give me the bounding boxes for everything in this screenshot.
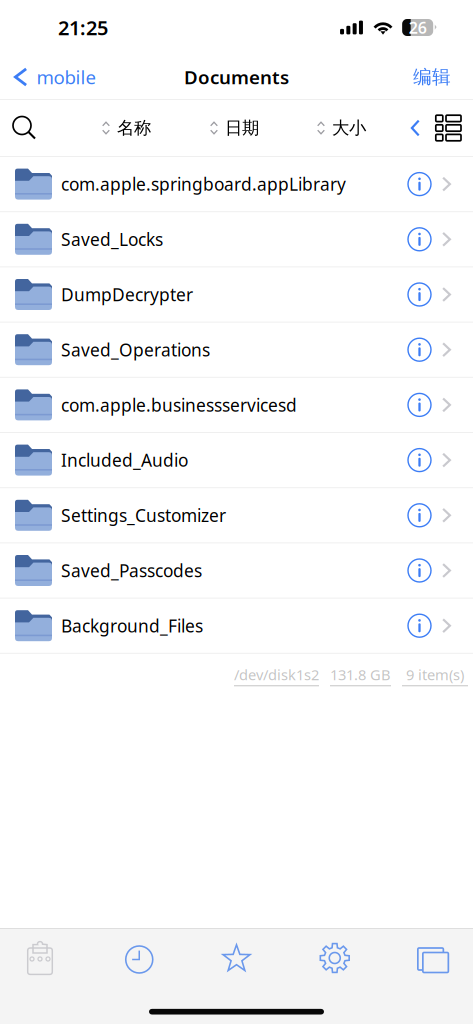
button[interactable]: com.apple.businessservicesd — [0, 378, 473, 433]
staticText: Saved_Locks — [61, 228, 163, 251]
staticText: 日期 — [225, 117, 259, 139]
staticText: Documents — [184, 65, 289, 89]
staticText: /dev/disk1s2 — [234, 665, 319, 684]
button[interactable]: Windows — [393, 929, 473, 987]
staticText: 21:25 — [58, 14, 108, 41]
button[interactable]: Search — [0, 106, 36, 149]
button[interactable]: Saved_Locks — [0, 212, 473, 267]
staticText: 9 item(s) — [406, 665, 464, 684]
button[interactable]: Clipboard — [0, 929, 80, 987]
staticText: Settings_Customizer — [61, 504, 226, 527]
button[interactable]: Settings — [295, 929, 375, 987]
button[interactable]: Previous — [411, 109, 420, 146]
button[interactable]: Favorites — [196, 929, 276, 987]
staticText: 131.8 GB — [330, 665, 391, 684]
button[interactable]: Saved_Passcodes — [0, 543, 473, 599]
staticText: Saved_Operations — [61, 338, 210, 361]
button[interactable]: mobile — [0, 53, 96, 101]
button[interactable]: DumpDecrypter — [0, 267, 473, 323]
button[interactable]: Settings_Customizer — [0, 488, 473, 543]
button[interactable]: 名称 — [102, 107, 151, 149]
button[interactable]: 131.8 GB — [330, 665, 391, 686]
button[interactable]: 9 item(s) — [402, 665, 468, 686]
button[interactable]: Included_Audio — [0, 433, 473, 488]
button[interactable]: Background_Files — [0, 599, 473, 654]
button[interactable]: com.apple.springboard.appLibrary — [0, 157, 473, 212]
button[interactable]: 编辑 — [413, 53, 473, 100]
button[interactable]: View mode — [420, 107, 473, 148]
staticText: Saved_Passcodes — [61, 559, 202, 582]
staticText: 26 — [409, 17, 427, 38]
button[interactable]: /dev/disk1s2 — [234, 665, 319, 686]
staticText: Included_Audio — [61, 449, 188, 472]
staticText: 名称 — [117, 117, 151, 139]
button[interactable]: Recents — [98, 929, 178, 987]
staticText: com.apple.springboard.appLibrary — [61, 173, 346, 196]
button[interactable]: 大小 — [317, 107, 366, 149]
staticText: DumpDecrypter — [61, 283, 193, 306]
staticText: mobile — [36, 65, 96, 89]
button[interactable]: Saved_Operations — [0, 323, 473, 378]
button[interactable]: 日期 — [210, 107, 259, 149]
staticText: 大小 — [332, 117, 366, 139]
staticText: Background_Files — [61, 614, 203, 637]
staticText: 编辑 — [413, 65, 451, 88]
staticText: com.apple.businessservicesd — [61, 393, 297, 416]
